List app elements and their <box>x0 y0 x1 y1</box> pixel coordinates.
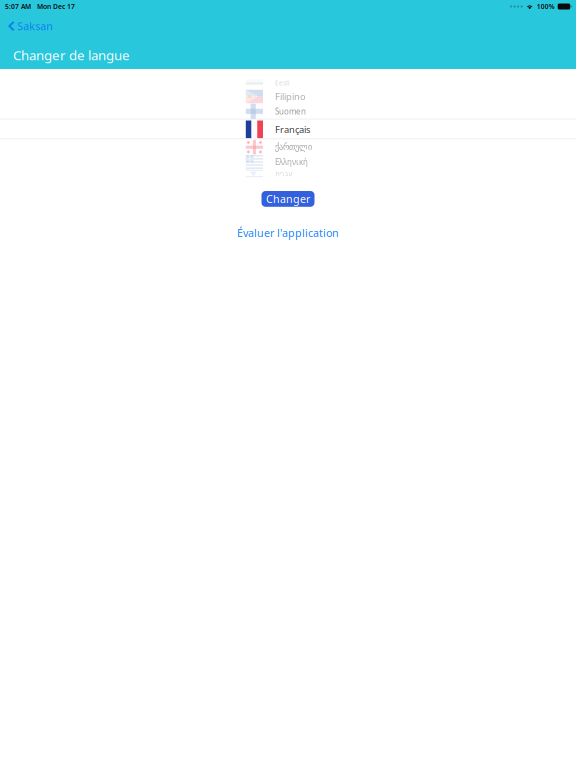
staticText: Suomen <box>275 106 306 117</box>
button[interactable]: Saksan <box>0 13 63 37</box>
staticText: Changer de langue <box>13 46 130 64</box>
staticText: Eesti <box>275 79 290 87</box>
staticText: Saksan <box>17 19 53 33</box>
staticText: ქართული <box>275 143 312 152</box>
staticText: Filipino <box>275 90 306 103</box>
button[interactable]: Changer <box>261 191 314 207</box>
button[interactable]: Évaluer l'application <box>237 226 339 240</box>
staticText: עברית <box>275 170 292 177</box>
staticText: Évaluer l'application <box>237 226 339 240</box>
staticText: Français <box>275 123 310 135</box>
staticText: Ελληνική <box>275 157 308 167</box>
staticText: 5:07 AM <box>5 2 31 11</box>
staticText: Mon Dec 17 <box>37 2 75 11</box>
staticText: 100% <box>537 2 555 11</box>
staticText: Changer <box>266 192 310 206</box>
